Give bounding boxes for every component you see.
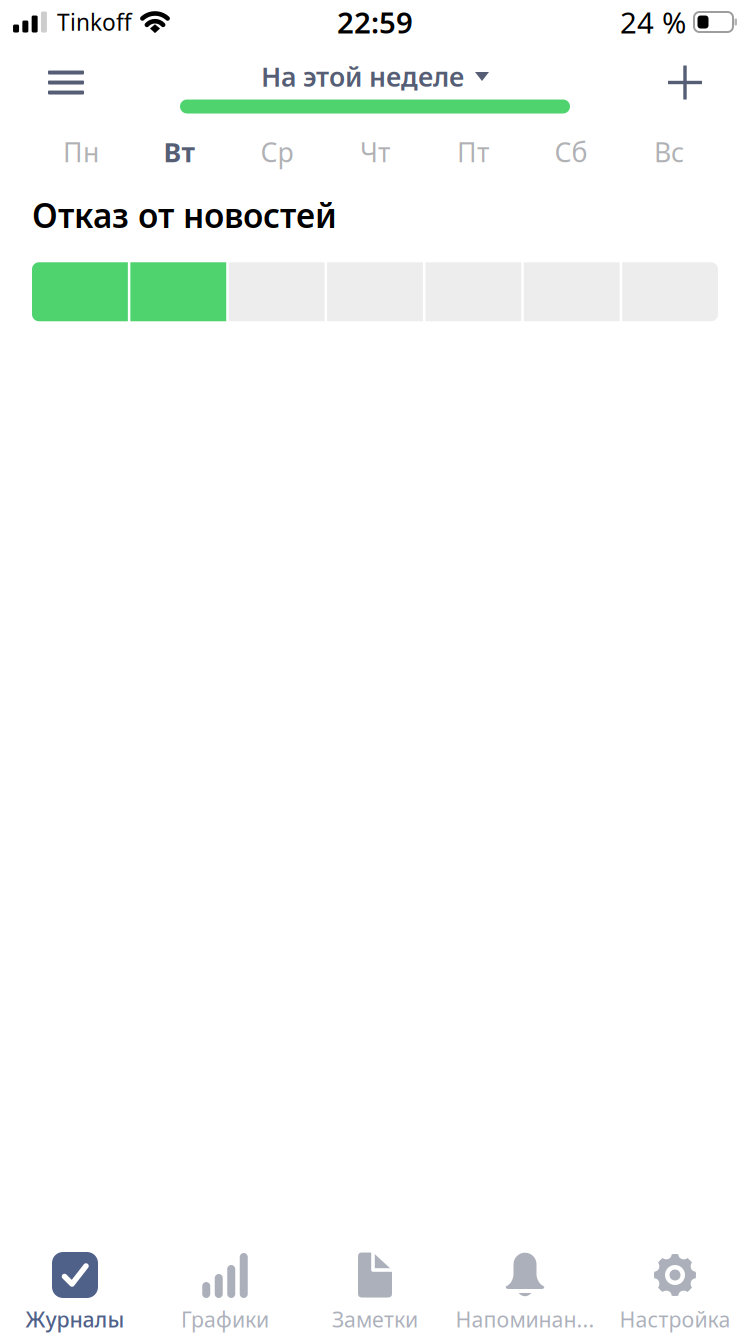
button[interactable]: Графики xyxy=(150,1248,300,1334)
staticText: Вт xyxy=(163,134,194,170)
staticText: Ср xyxy=(260,134,293,170)
button[interactable]: Настройка xyxy=(600,1248,750,1334)
staticText: Журналы xyxy=(25,1305,124,1333)
button[interactable]: Напоминан... xyxy=(450,1248,600,1334)
staticText: Tinkoff xyxy=(57,7,132,37)
button[interactable]: Add habit xyxy=(647,56,723,108)
staticText: 24 % xyxy=(620,2,686,41)
staticText: Чт xyxy=(360,134,390,170)
staticText: Заметки xyxy=(332,1305,418,1333)
staticText: Настройка xyxy=(619,1305,730,1333)
staticText: Напоминан... xyxy=(455,1305,594,1333)
staticText: Вс xyxy=(654,134,684,170)
staticText: Сб xyxy=(554,134,587,170)
staticText: Отказ от новостей xyxy=(32,193,337,237)
staticText: На этой неделе xyxy=(261,59,464,94)
staticText: 22:59 xyxy=(337,2,413,41)
button[interactable]: Заметки xyxy=(300,1248,450,1334)
button[interactable]: Журналы xyxy=(0,1248,150,1334)
button[interactable]: Menu xyxy=(28,56,104,108)
staticText: Графики xyxy=(181,1305,269,1333)
staticText: Пн xyxy=(63,134,99,170)
button[interactable]: На этой неделе xyxy=(255,61,495,91)
staticText: Пт xyxy=(457,134,489,170)
